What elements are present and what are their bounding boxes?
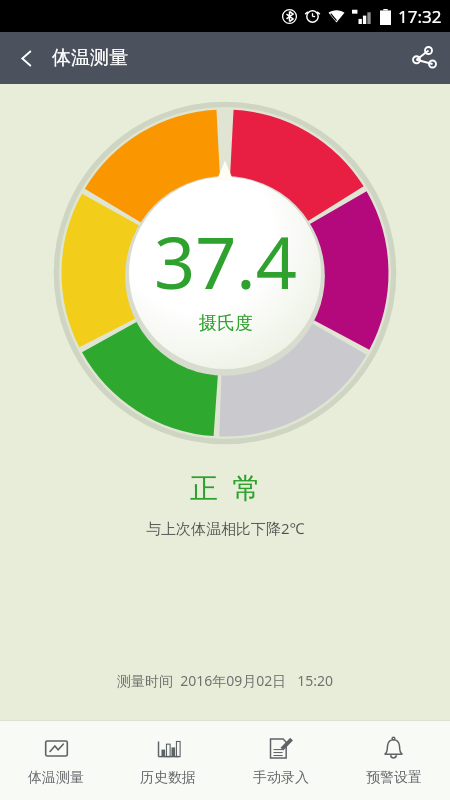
staticText: 体温测量 xyxy=(52,46,128,70)
staticText: 体温测量 xyxy=(28,769,84,787)
button[interactable]: 体温测量 xyxy=(0,721,112,800)
button[interactable]: 历史数据 xyxy=(112,721,224,800)
staticText: 预警设置 xyxy=(366,769,422,787)
staticText: 与上次体温相比下降2℃ xyxy=(146,518,305,538)
button[interactable]: Back xyxy=(0,32,52,84)
staticText: 37.4 xyxy=(154,212,297,310)
button[interactable]: 手动录入 xyxy=(224,721,337,800)
button[interactable]: 预警设置 xyxy=(337,721,450,800)
staticText: 正 常 xyxy=(190,468,261,506)
staticText: 17:32 xyxy=(398,5,442,28)
staticText: 历史数据 xyxy=(140,769,196,787)
staticText: 摄氏度 xyxy=(199,312,253,335)
button[interactable]: Share xyxy=(398,32,450,84)
staticText: 手动录入 xyxy=(253,769,309,787)
staticText: 测量时间 2016年09月02日 15:20 xyxy=(117,671,334,690)
